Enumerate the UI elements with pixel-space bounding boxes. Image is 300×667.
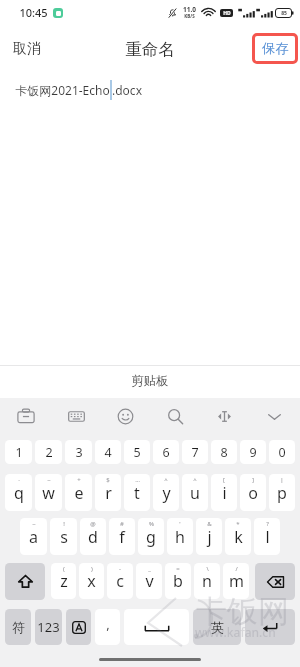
staticText: # (120, 520, 124, 528)
button[interactable]: · (5, 474, 32, 511)
button[interactable]: 保存 (252, 33, 298, 64)
staticText: ^ (193, 476, 197, 484)
button[interactable]: Clipboard (13, 403, 39, 429)
staticText: g (146, 526, 156, 548)
staticText: 6 (162, 444, 170, 461)
staticText: o (248, 482, 258, 504)
button[interactable]: ' (167, 518, 193, 555)
button[interactable]: | (269, 474, 295, 511)
button[interactable]: … (124, 474, 150, 511)
button[interactable]: 0 (269, 440, 295, 464)
button[interactable]: % (138, 518, 164, 555)
staticText: ! (63, 520, 65, 528)
staticText: % (149, 520, 154, 528)
button[interactable]: ^ (182, 474, 208, 511)
staticText: · (18, 476, 20, 484)
button[interactable]: 2 (35, 440, 62, 464)
button[interactable]: ~ (20, 518, 47, 555)
staticText: 9 (249, 444, 257, 461)
button[interactable]: 取消 (6, 34, 48, 64)
staticText: _ (148, 565, 151, 573)
staticText: + (77, 476, 81, 484)
button[interactable]: Emoji (112, 403, 138, 429)
staticText: 保存 (262, 40, 289, 57)
staticText: ~ (32, 520, 36, 528)
button[interactable]: ( (51, 563, 76, 599)
staticText: m (229, 570, 244, 592)
button[interactable]: = (165, 563, 191, 599)
staticText: .docx (112, 82, 142, 98)
button[interactable]: Hide keyboard (261, 403, 287, 429)
staticText: d (88, 526, 98, 548)
staticText: = (176, 565, 180, 573)
button[interactable]: Shift (5, 563, 45, 600)
staticText: 85 (281, 10, 287, 17)
staticText: h (175, 526, 185, 548)
button[interactable]: Keyboard (63, 403, 89, 429)
staticText: c (116, 570, 124, 592)
button[interactable]: 英 (193, 609, 241, 645)
staticText: 符 (12, 619, 25, 635)
staticText: ' (179, 520, 181, 528)
button[interactable]: @ (80, 518, 106, 555)
staticText: ~ (47, 476, 51, 484)
staticText: ] (252, 476, 254, 484)
button[interactable]: ? (254, 518, 280, 555)
button[interactable]: Switch language (66, 609, 91, 645)
button[interactable]: Search (162, 403, 188, 429)
button[interactable]: 符 (5, 609, 31, 645)
staticText: 8 (220, 444, 228, 461)
staticText: 5 (133, 444, 141, 461)
button[interactable]: + (65, 474, 92, 511)
staticText: r (105, 482, 112, 504)
staticText: t (134, 482, 140, 504)
staticText: KB/S (184, 13, 195, 19)
button[interactable]: Enter (245, 609, 295, 645)
staticText: 0 (278, 444, 286, 461)
button[interactable]: 9 (240, 440, 266, 464)
button[interactable]: \ (194, 563, 220, 599)
staticText: $ (106, 476, 110, 484)
staticText: q (14, 482, 24, 504)
button[interactable]: 8 (211, 440, 237, 464)
button[interactable]: * (225, 518, 251, 555)
button[interactable]: Move cursor (211, 403, 237, 429)
button[interactable]: 1 (5, 440, 32, 464)
button[interactable]: / (223, 563, 249, 599)
button[interactable]: 6 (153, 440, 179, 464)
staticText: 2 (45, 444, 53, 461)
staticText: s (60, 526, 68, 548)
button[interactable]: $ (95, 474, 121, 511)
staticText: 3 (75, 444, 83, 461)
staticText: a (29, 526, 38, 548)
staticText: k (234, 526, 243, 548)
staticText: ^ (164, 476, 168, 484)
button[interactable]: , (95, 609, 120, 645)
button[interactable]: ^ (153, 474, 179, 511)
staticText: 英 (211, 619, 224, 635)
staticText: ) (91, 565, 93, 573)
button[interactable]: 3 (65, 440, 92, 464)
button[interactable]: Backspace (255, 563, 295, 600)
staticText: 剪贴板 (131, 373, 169, 389)
button[interactable]: [ (211, 474, 237, 511)
button[interactable]: ) (79, 563, 104, 599)
button[interactable]: 5 (124, 440, 150, 464)
button[interactable]: # (109, 518, 135, 555)
staticText: … (135, 476, 140, 484)
button[interactable]: - (107, 563, 133, 599)
staticText: p (277, 482, 287, 504)
staticText: e (74, 482, 84, 504)
button[interactable]: & (196, 518, 222, 555)
staticText: 7 (191, 444, 199, 461)
button[interactable]: _ (136, 563, 162, 599)
button[interactable]: 4 (95, 440, 121, 464)
staticText: @ (90, 520, 96, 528)
button[interactable]: 123 (35, 609, 62, 645)
button[interactable]: ~ (35, 474, 62, 511)
button[interactable]: ! (50, 518, 77, 555)
button[interactable]: 7 (182, 440, 208, 464)
staticText: 取消 (13, 40, 41, 58)
button[interactable]: ] (240, 474, 266, 511)
button[interactable]: Space (124, 609, 189, 645)
